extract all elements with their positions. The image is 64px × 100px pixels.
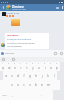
button[interactable]: Back xyxy=(0,4,6,11)
button[interactable]: z xyxy=(9,80,15,90)
button[interactable]: Add attachment xyxy=(0,50,5,57)
staticText: k xyxy=(47,74,49,78)
staticText: n xyxy=(41,83,43,87)
staticText: u xyxy=(38,66,40,70)
button[interactable]: ?123 xyxy=(0,90,9,100)
staticText: r xyxy=(20,66,22,70)
staticText: t xyxy=(26,66,28,70)
button[interactable]: k xyxy=(45,71,51,80)
button[interactable]: Video thumbnail xyxy=(2,12,6,16)
button[interactable]: l xyxy=(51,71,57,80)
staticText: , xyxy=(12,93,13,97)
button[interactable]: 8 xyxy=(42,62,48,71)
staticText: b xyxy=(35,83,37,87)
button[interactable]: GIF xyxy=(12,58,15,61)
staticText: y xyxy=(32,66,34,70)
staticText: m xyxy=(47,83,50,87)
button[interactable]: f xyxy=(21,71,27,80)
staticText: 8 xyxy=(44,62,46,64)
button[interactable]: b xyxy=(33,80,39,90)
staticText: 5 xyxy=(26,62,28,64)
button[interactable]: g xyxy=(27,71,33,80)
staticText: o xyxy=(50,66,52,70)
button[interactable]: Instagram xyxy=(5,33,49,49)
staticText: p xyxy=(56,66,58,70)
staticText: g xyxy=(29,74,31,78)
staticText: l xyxy=(54,74,55,78)
staticText: q xyxy=(2,66,4,70)
button[interactable]: Sticker xyxy=(2,58,5,61)
staticText: Shared a link xyxy=(6,12,20,15)
button[interactable]: 9 xyxy=(48,62,54,71)
button[interactable]: n xyxy=(39,80,45,90)
button[interactable]: m xyxy=(45,80,51,90)
button[interactable]: 7 xyxy=(36,62,42,71)
staticText: h xyxy=(35,74,37,78)
staticText: 0 xyxy=(56,62,58,64)
staticText: Instagram xyxy=(7,34,19,37)
staticText: z xyxy=(11,83,13,87)
staticText: I'll send you the photos tonight xyxy=(7,42,35,45)
button[interactable]: Photo xyxy=(11,19,20,26)
staticText: ?123 xyxy=(2,94,7,97)
staticText: 6 xyxy=(32,62,34,64)
staticText: e xyxy=(14,66,16,70)
button[interactable]: 5 xyxy=(24,62,30,71)
button[interactable]: s xyxy=(9,71,15,80)
staticText: . xyxy=(41,93,42,97)
staticText: 2 xyxy=(8,62,10,64)
staticText: 3 xyxy=(14,62,16,64)
button[interactable]: x xyxy=(15,80,21,90)
staticText: Desiree xyxy=(12,4,24,8)
staticText: v xyxy=(29,83,31,87)
button[interactable]: 0 xyxy=(54,62,60,71)
button[interactable]: v xyxy=(27,80,33,90)
staticText: Active 2m ago xyxy=(12,8,26,11)
staticText: i xyxy=(45,66,46,70)
staticText: c xyxy=(23,83,25,87)
button[interactable]: d xyxy=(15,71,21,80)
button[interactable]: 6 xyxy=(30,62,36,71)
staticText: instagram.com/p/CZ3kfm xyxy=(7,38,32,41)
staticText: 9 xyxy=(50,62,52,64)
button[interactable]: Emoji xyxy=(58,50,64,57)
staticText: f xyxy=(23,74,25,78)
staticText: 7 xyxy=(38,62,40,64)
button[interactable]: 4 xyxy=(18,62,24,71)
staticText: a xyxy=(5,74,7,78)
staticText: j xyxy=(42,74,43,78)
button[interactable]: , xyxy=(9,90,15,100)
button[interactable]: 2 xyxy=(6,62,12,71)
button[interactable]: c xyxy=(21,80,27,90)
button[interactable]: a xyxy=(3,71,9,80)
staticText: 1 xyxy=(2,62,4,64)
staticText: Will be awesome xyxy=(7,45,22,48)
staticText: d xyxy=(17,74,19,78)
staticText: Message xyxy=(5,52,15,55)
staticText: s xyxy=(11,74,13,78)
staticText: 4 xyxy=(20,62,22,64)
staticText: w xyxy=(8,66,11,70)
button[interactable]: Voice message xyxy=(52,50,58,57)
button[interactable]: 1 xyxy=(0,62,6,71)
button[interactable]: More options xyxy=(60,4,64,11)
button[interactable]: 3 xyxy=(12,62,18,71)
button[interactable]: j xyxy=(39,71,45,80)
button[interactable]: h xyxy=(33,71,39,80)
staticText: x xyxy=(17,83,19,87)
button[interactable]: Video call xyxy=(54,4,60,11)
